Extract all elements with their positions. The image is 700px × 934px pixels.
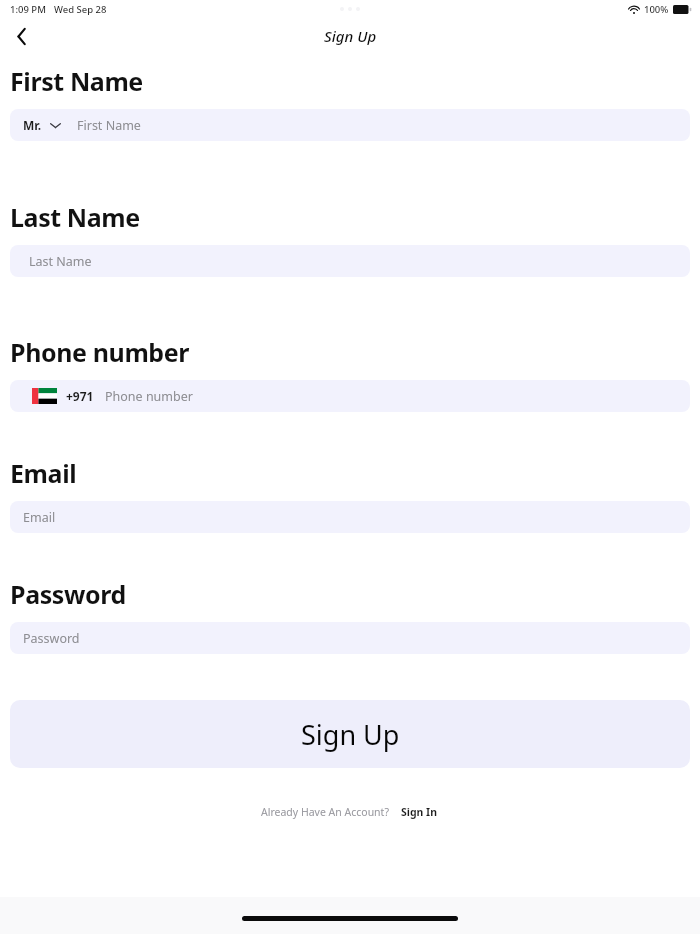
- button[interactable]: Select country code: [32, 388, 94, 404]
- button[interactable]: Sign Up: [10, 700, 690, 768]
- staticText: First Name: [77, 117, 141, 134]
- staticText: Sign Up: [324, 26, 377, 46]
- button[interactable]: Email: [10, 501, 690, 533]
- button[interactable]: Back: [4, 19, 38, 53]
- staticText: Phone number: [105, 388, 193, 405]
- staticText: Wed Sep 28: [54, 3, 107, 16]
- staticText: Sign In: [401, 805, 438, 819]
- staticText: Last Name: [29, 253, 92, 270]
- staticText: Sign Up: [301, 716, 400, 753]
- button[interactable]: Mr.: [10, 109, 690, 141]
- staticText: Password: [10, 577, 126, 611]
- button[interactable]: Sign In: [399, 802, 440, 822]
- staticText: +971: [66, 388, 94, 404]
- staticText: Email: [10, 456, 77, 490]
- staticText: Phone number: [10, 335, 190, 369]
- button[interactable]: Password: [10, 622, 690, 654]
- staticText: Email: [23, 509, 56, 526]
- button[interactable]: Mr.: [21, 113, 63, 137]
- staticText: First Name: [10, 64, 143, 98]
- staticText: 1:09 PM: [10, 3, 46, 16]
- staticText: 100%: [644, 3, 669, 16]
- staticText: Password: [23, 630, 80, 647]
- button[interactable]: Last Name: [10, 245, 690, 277]
- staticText: Mr.: [23, 117, 42, 133]
- staticText: Already Have An Account?: [261, 805, 389, 819]
- button[interactable]: Select country code: [10, 380, 690, 412]
- staticText: Last Name: [10, 200, 140, 234]
